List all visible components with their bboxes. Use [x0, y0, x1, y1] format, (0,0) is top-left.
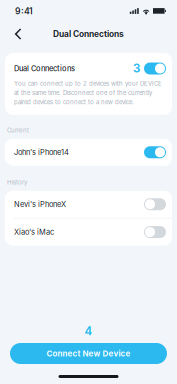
button[interactable]: Connect New Device — [10, 343, 167, 364]
staticText: 9:41 — [15, 6, 33, 16]
button[interactable]: Back — [6, 23, 30, 45]
staticText: Dual Connections — [53, 29, 124, 39]
button[interactable]: Nevi's iPhoneX — [5, 191, 172, 218]
staticText: 4 — [84, 324, 92, 338]
staticText: Current — [7, 127, 29, 134]
staticText: 3 — [133, 62, 140, 75]
staticText: Xiao's iMac — [14, 228, 54, 237]
staticText: Dual Connections — [14, 64, 75, 73]
staticText: John's iPhone14 — [14, 148, 69, 157]
staticText: History — [7, 179, 27, 186]
staticText: Nevi's iPhoneX — [14, 200, 66, 209]
staticText: Connect New Device — [46, 349, 130, 358]
button[interactable]: Xiao's iMac — [5, 219, 172, 246]
staticText: You can connect up to 2 devices with you… — [14, 80, 162, 106]
button[interactable]: John's iPhone14 — [5, 139, 172, 166]
